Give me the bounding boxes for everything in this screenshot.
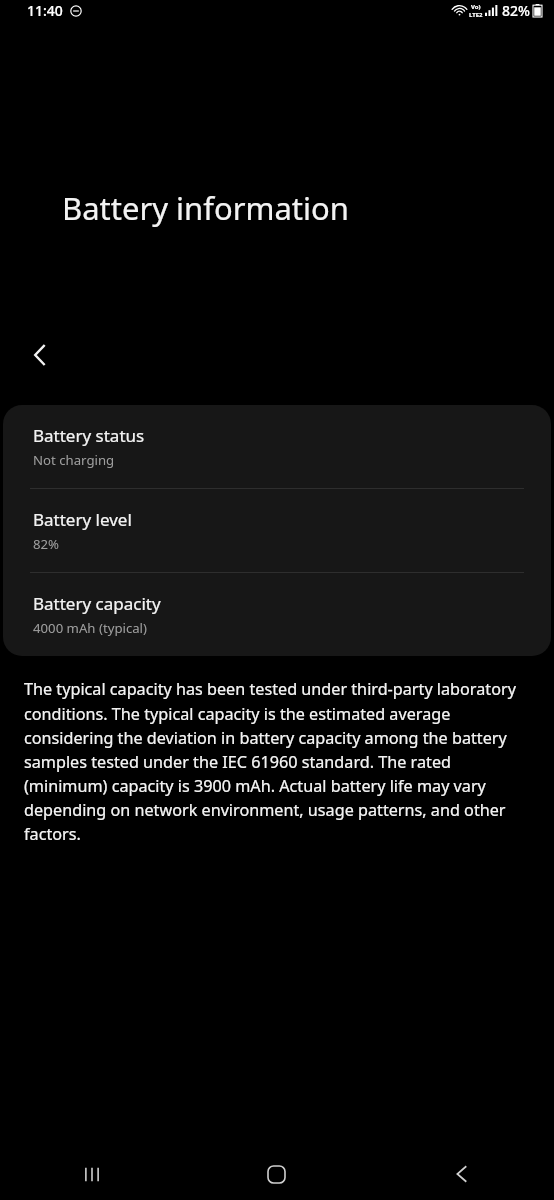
staticText: Vo) (471, 3, 481, 11)
button[interactable]: Battery status (3, 405, 551, 488)
staticText: The typical capacity has been tested und… (24, 678, 530, 845)
staticText: Battery status (33, 424, 145, 447)
button[interactable]: Battery level (3, 489, 551, 572)
staticText: Battery level (33, 508, 132, 531)
staticText: Not charging (33, 451, 115, 469)
button[interactable]: Back (369, 1148, 554, 1200)
button[interactable]: Navigate up (14, 329, 66, 381)
staticText: 11:40 (27, 1, 63, 20)
button[interactable]: Battery capacity (3, 573, 551, 656)
staticText: LTE2 (469, 11, 483, 19)
button[interactable]: Home (184, 1148, 369, 1200)
staticText: 82% (33, 535, 60, 553)
staticText: Battery capacity (33, 592, 161, 615)
staticText: 4000 mAh (typical) (33, 619, 147, 637)
button[interactable]: Recents (0, 1148, 184, 1200)
staticText: 82% (502, 1, 530, 20)
staticText: Battery information (62, 187, 349, 229)
